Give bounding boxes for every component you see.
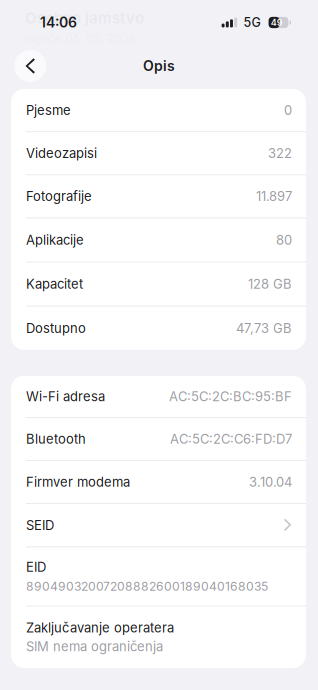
button[interactable]: Back: [13, 49, 47, 83]
staticText: SEID: [26, 517, 54, 533]
staticText: Wi-Fi adresa: [26, 389, 105, 404]
staticText: Kapacitet: [26, 276, 83, 292]
button[interactable]: Kapacitet: [11, 262, 306, 306]
staticText: Zaključavanje operatera: [26, 620, 174, 636]
button[interactable]: Dostupno: [11, 306, 306, 350]
staticText: 80: [276, 232, 292, 248]
staticText: 3.10.04: [249, 474, 292, 490]
staticText: 322: [268, 145, 292, 161]
staticText: 11.897: [256, 188, 292, 204]
staticText: Fotografije: [26, 188, 92, 204]
staticText: 5G: [244, 15, 261, 30]
staticText: AC:5C:2C:C6:FD:D7: [170, 431, 292, 447]
staticText: AC:5C:2C:BC:95:BF: [169, 389, 292, 404]
staticText: Opis: [143, 57, 175, 74]
staticText: Firmver modema: [26, 474, 130, 490]
button[interactable]: Firmver modema: [11, 461, 306, 503]
button[interactable]: SEID: [11, 504, 306, 546]
staticText: 89049032007208882600189040168035: [26, 579, 268, 594]
staticText: Bluetooth: [26, 431, 86, 447]
staticText: Aplikacije: [26, 232, 84, 248]
staticText: Pjesme: [26, 102, 71, 118]
button[interactable]: Fotografije: [11, 175, 306, 217]
staticText: Videozapisi: [26, 145, 97, 161]
staticText: SIM nema ograničenja: [26, 639, 163, 654]
staticText: 14:06: [40, 14, 77, 31]
staticText: 0: [284, 102, 292, 118]
button[interactable]: Pjesme: [11, 89, 306, 131]
button[interactable]: Wi-Fi adresa: [11, 376, 306, 417]
staticText: 47,73 GB: [236, 320, 292, 336]
staticText: Osobno jamstvo: [25, 9, 144, 27]
staticText: Dostupno: [26, 320, 86, 336]
staticText: 128 GB: [248, 276, 292, 292]
button[interactable]: Zaključavanje operatera: [11, 606, 306, 668]
button[interactable]: Aplikacije: [11, 218, 306, 262]
button[interactable]: Bluetooth: [11, 418, 306, 460]
button[interactable]: EID: [11, 547, 306, 606]
button[interactable]: Videozapisi: [11, 132, 306, 174]
staticText: 49: [271, 17, 283, 28]
staticText: EID: [26, 559, 46, 575]
